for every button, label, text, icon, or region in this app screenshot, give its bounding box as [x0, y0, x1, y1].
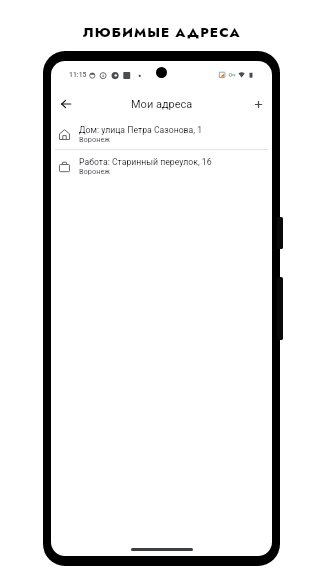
- staticText: Работа: Старинный переулок, 16: [79, 157, 212, 167]
- staticText: 11:15: [69, 71, 87, 79]
- button[interactable]: Дом: улица Петра Сазонова, 1: [51, 118, 272, 149]
- staticText: Воронеж: [79, 135, 111, 144]
- staticText: Дом: улица Петра Сазонова, 1: [79, 125, 203, 135]
- button[interactable]: Добавить адрес: [248, 91, 269, 117]
- staticText: ЛЮБИМЫЕ АДРЕСА: [83, 23, 241, 42]
- staticText: Воронеж: [79, 167, 111, 176]
- staticText: Мои адреса: [131, 98, 193, 111]
- button[interactable]: Назад: [55, 91, 76, 117]
- button[interactable]: Работа: Старинный переулок, 16: [51, 150, 272, 181]
